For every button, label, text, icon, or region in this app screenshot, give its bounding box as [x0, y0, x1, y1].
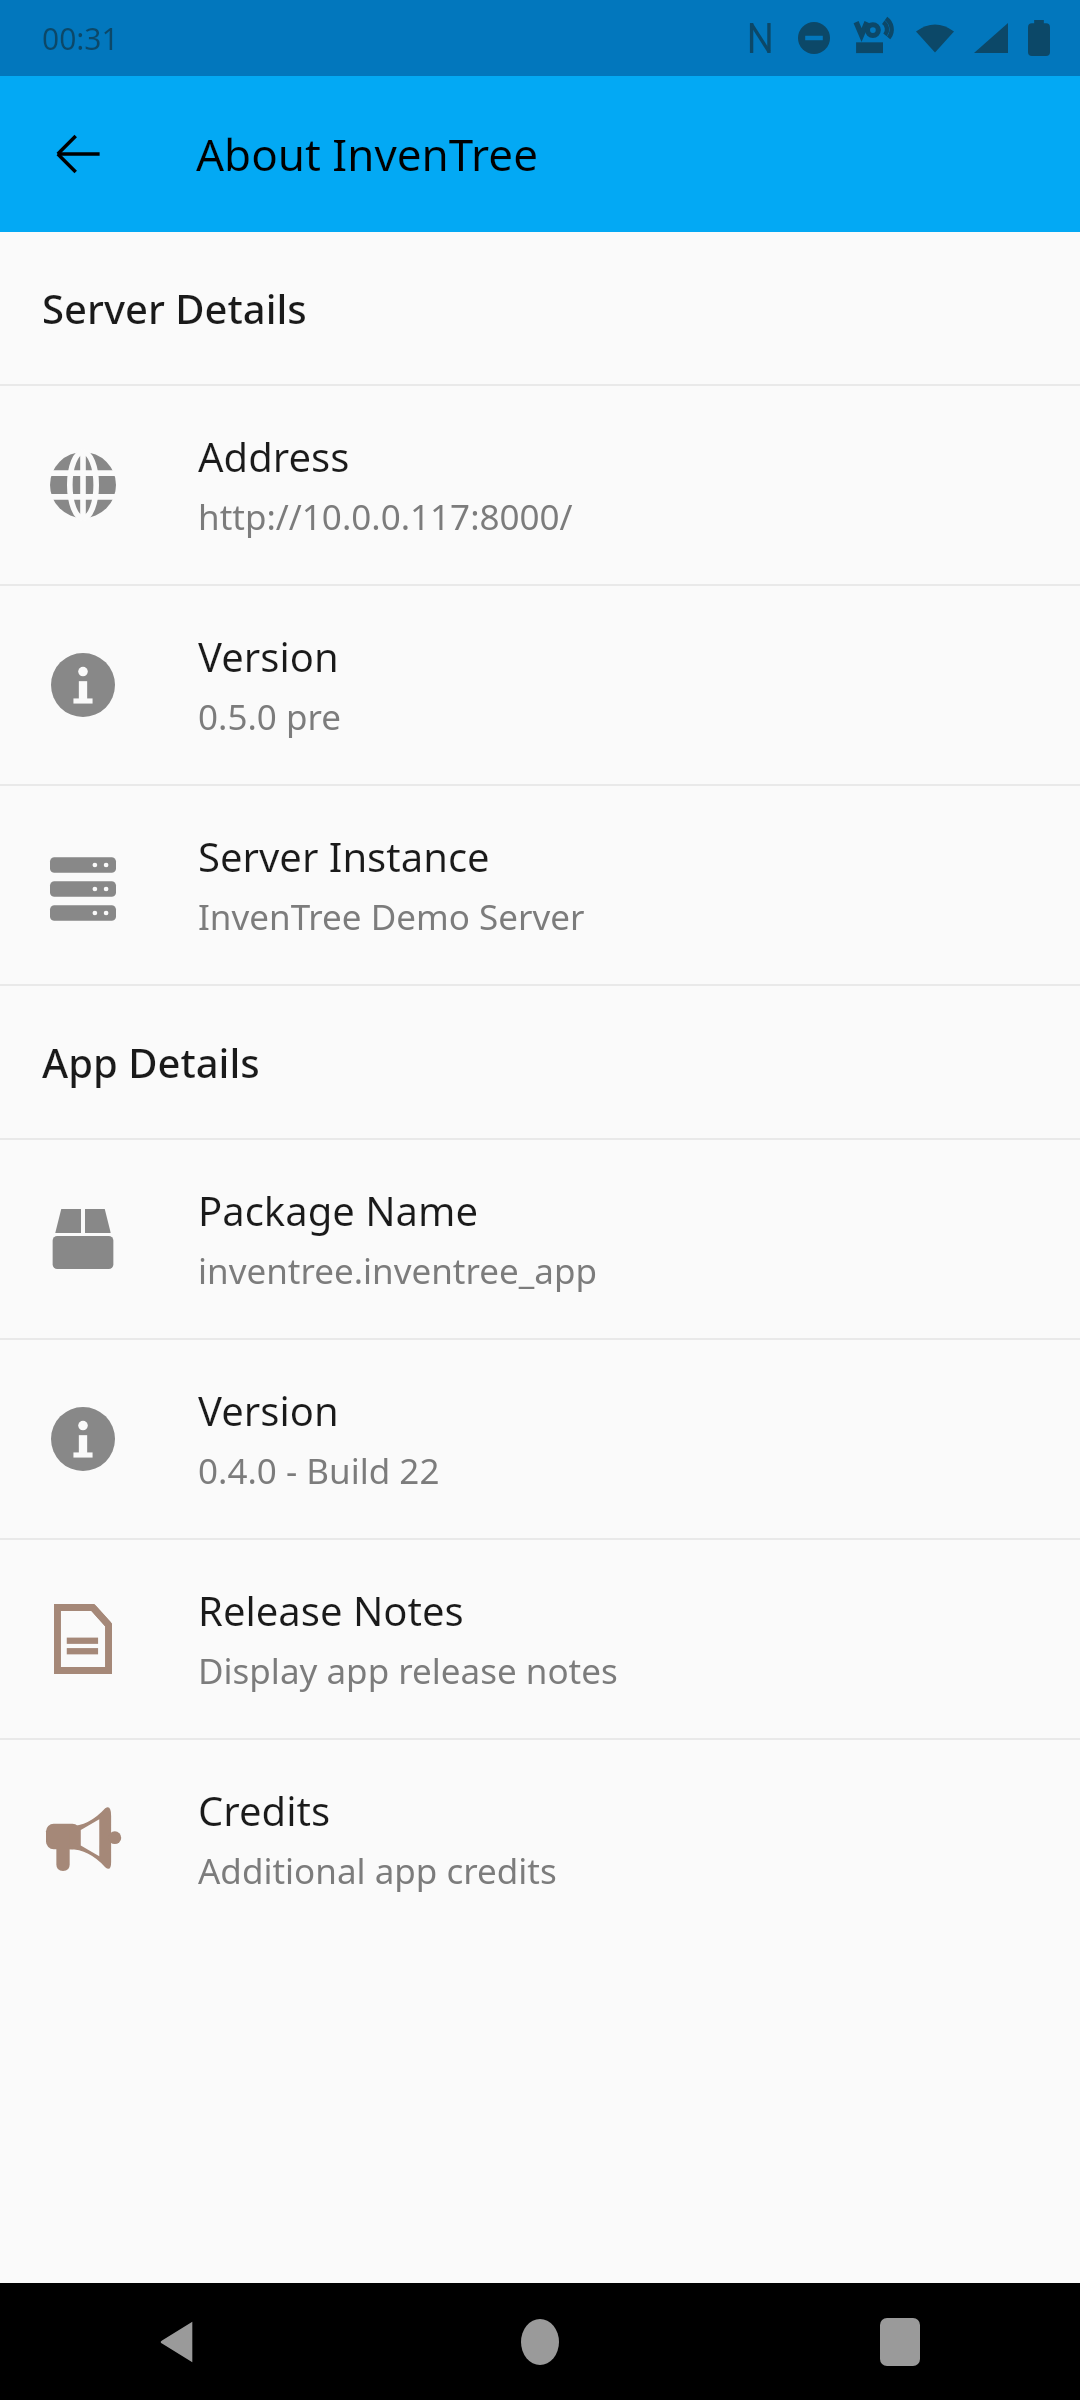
- staticText: 0.4.0 - Build 22: [198, 1447, 440, 1495]
- staticText: Release Notes: [198, 1583, 464, 1637]
- button[interactable]: Recent apps: [845, 2287, 955, 2397]
- staticText: Credits: [198, 1783, 331, 1837]
- button[interactable]: Package Name: [0, 1140, 1080, 1338]
- staticText: http://10.0.0.117:8000/: [198, 493, 573, 541]
- staticText: Version: [198, 629, 339, 683]
- button[interactable]: Address: [0, 386, 1080, 584]
- button[interactable]: Version: [0, 1340, 1080, 1538]
- staticText: Server Details: [42, 281, 307, 335]
- staticText: 00:31: [42, 18, 119, 59]
- staticText: Additional app credits: [198, 1847, 557, 1895]
- button[interactable]: Back: [26, 102, 130, 206]
- button[interactable]: Home: [485, 2287, 595, 2397]
- staticText: Version: [198, 1383, 339, 1437]
- button[interactable]: Version: [0, 586, 1080, 784]
- staticText: Address: [198, 429, 350, 483]
- button[interactable]: Back: [125, 2287, 235, 2397]
- button[interactable]: Credits: [0, 1740, 1080, 1938]
- staticText: 0.5.0 pre: [198, 693, 341, 741]
- button[interactable]: Server Instance: [0, 786, 1080, 984]
- staticText: Display app release notes: [198, 1647, 618, 1695]
- staticText: Server Instance: [198, 829, 490, 883]
- staticText: App Details: [42, 1035, 260, 1089]
- staticText: Package Name: [198, 1183, 478, 1237]
- button[interactable]: Release Notes: [0, 1540, 1080, 1738]
- staticText: InvenTree Demo Server: [198, 893, 585, 941]
- staticText: About InvenTree: [196, 124, 538, 184]
- staticText: inventree.inventree_app: [198, 1247, 597, 1295]
